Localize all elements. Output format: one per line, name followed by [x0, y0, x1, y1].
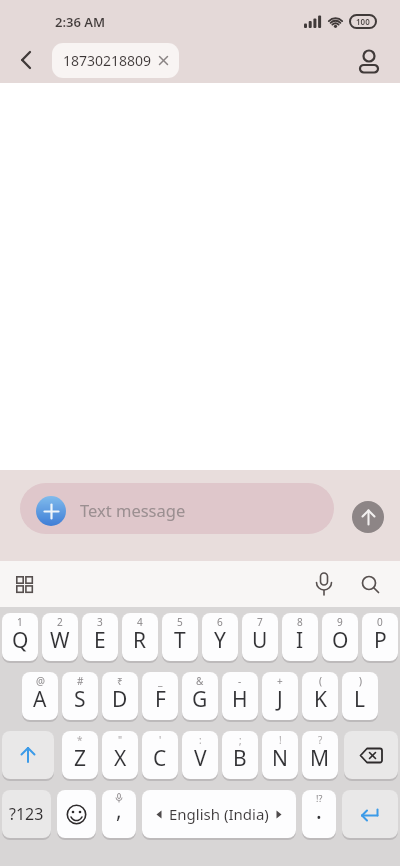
- button[interactable]: English (India): [142, 790, 296, 838]
- button[interactable]: #: [62, 672, 98, 720]
- staticText: ₹: [117, 674, 123, 688]
- staticText: *: [77, 733, 83, 747]
- button[interactable]: 8: [282, 613, 318, 661]
- staticText: ": [118, 733, 123, 747]
- staticText: 8: [297, 615, 303, 629]
- button[interactable]: [308, 568, 340, 600]
- staticText: 2: [57, 615, 63, 629]
- button[interactable]: [352, 42, 386, 78]
- button[interactable]: [57, 790, 96, 838]
- staticText: !: [279, 733, 282, 747]
- button[interactable]: [10, 44, 42, 76]
- button[interactable]: ): [342, 672, 378, 720]
- button[interactable]: [8, 568, 40, 600]
- staticText: H: [232, 685, 248, 714]
- staticText: Y: [214, 626, 226, 655]
- button[interactable]: (: [302, 672, 338, 720]
- button[interactable]: ': [142, 731, 178, 779]
- button[interactable]: 18730218809: [52, 43, 179, 78]
- staticText: V: [194, 744, 207, 773]
- staticText: E: [94, 626, 106, 655]
- button[interactable]: ₹: [102, 672, 138, 720]
- staticText: English (India): [169, 804, 269, 824]
- button[interactable]: [342, 790, 398, 838]
- staticText: U: [252, 626, 268, 655]
- staticText: I: [296, 626, 304, 655]
- button[interactable]: [352, 501, 384, 533]
- staticText: 0: [377, 615, 383, 629]
- button[interactable]: &: [182, 672, 218, 720]
- staticText: ;: [239, 733, 242, 747]
- staticText: Text message: [80, 499, 186, 521]
- button[interactable]: [344, 731, 398, 779]
- button[interactable]: !?: [302, 790, 336, 838]
- staticText: Q: [12, 626, 29, 655]
- button[interactable]: ?: [302, 731, 338, 779]
- staticText: T: [174, 626, 186, 655]
- staticText: :: [199, 733, 202, 747]
- button[interactable]: 4: [122, 613, 158, 661]
- button[interactable]: 6: [202, 613, 238, 661]
- button[interactable]: 9: [322, 613, 358, 661]
- staticText: 6: [217, 615, 223, 629]
- staticText: @: [36, 674, 45, 688]
- button[interactable]: ?123: [2, 790, 51, 838]
- button[interactable]: _: [142, 672, 178, 720]
- button[interactable]: [354, 568, 386, 600]
- button[interactable]: 5: [162, 613, 198, 661]
- staticText: &: [196, 674, 204, 688]
- button[interactable]: !: [262, 731, 298, 779]
- staticText: -: [238, 674, 242, 688]
- staticText: N: [272, 744, 288, 773]
- staticText: J: [277, 685, 283, 714]
- button[interactable]: 3: [82, 613, 118, 661]
- button[interactable]: ,: [102, 790, 136, 838]
- button[interactable]: -: [222, 672, 258, 720]
- staticText: K: [314, 685, 327, 714]
- button[interactable]: [2, 731, 54, 779]
- button[interactable]: ": [102, 731, 138, 779]
- staticText: (: [319, 674, 322, 688]
- button[interactable]: *: [62, 731, 98, 779]
- button[interactable]: 0: [362, 613, 398, 661]
- staticText: _: [158, 674, 163, 688]
- button[interactable]: [36, 496, 66, 526]
- staticText: R: [133, 626, 147, 655]
- button[interactable]: 1: [2, 613, 38, 661]
- staticText: ?: [318, 733, 323, 747]
- staticText: M: [310, 744, 330, 773]
- staticText: P: [374, 626, 387, 655]
- button[interactable]: +: [262, 672, 298, 720]
- staticText: 3: [97, 615, 103, 629]
- staticText: S: [74, 685, 86, 714]
- button[interactable]: ;: [222, 731, 258, 779]
- staticText: X: [114, 744, 127, 773]
- staticText: 1: [17, 615, 23, 629]
- staticText: Z: [74, 744, 87, 773]
- button[interactable]: 2: [42, 613, 78, 661]
- staticText: 18730218809: [63, 51, 152, 70]
- button[interactable]: :: [182, 731, 218, 779]
- staticText: 9: [337, 615, 343, 629]
- staticText: B: [233, 744, 247, 773]
- staticText: W: [50, 626, 70, 655]
- staticText: F: [155, 685, 166, 714]
- button[interactable]: 7: [242, 613, 278, 661]
- button[interactable]: @: [22, 672, 58, 720]
- staticText: 4: [137, 615, 143, 629]
- staticText: 2:36 AM: [55, 13, 106, 31]
- staticText: ,: [116, 796, 122, 825]
- staticText: ): [359, 674, 362, 688]
- staticText: L: [354, 685, 366, 714]
- staticText: ': [159, 733, 162, 747]
- staticText: .: [316, 797, 322, 826]
- staticText: G: [192, 685, 208, 714]
- staticText: O: [332, 626, 349, 655]
- staticText: C: [153, 744, 167, 773]
- staticText: 5: [177, 615, 183, 629]
- staticText: 7: [257, 615, 263, 629]
- staticText: D: [112, 685, 128, 714]
- staticText: 100: [356, 16, 370, 27]
- staticText: +: [277, 674, 283, 688]
- button[interactable]: Text message: [20, 483, 334, 534]
